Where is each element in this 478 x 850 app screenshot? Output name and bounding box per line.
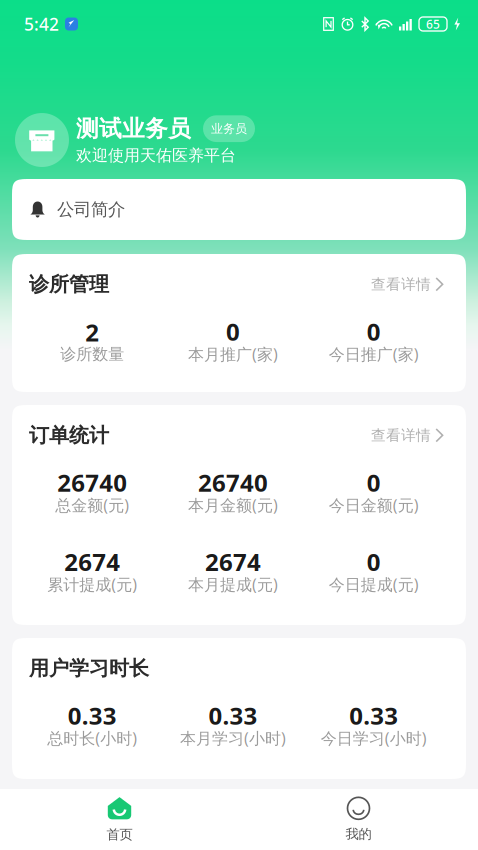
staticText: 26740 xyxy=(198,467,268,498)
staticText: 今日推广(家) xyxy=(329,343,419,365)
staticText: 总金额(元) xyxy=(55,494,129,516)
staticText: 本月学习(小时) xyxy=(180,727,286,749)
staticText: 业务员 xyxy=(211,121,247,136)
staticText: 5:42 xyxy=(24,12,59,35)
staticText: 总时长(小时) xyxy=(47,727,137,749)
staticText: 本月推广(家) xyxy=(188,343,278,365)
staticText: 测试业务员 xyxy=(76,115,191,143)
staticText: 我的 xyxy=(345,826,371,842)
staticText: 累计提成(元) xyxy=(47,574,137,595)
staticText: 0.33 xyxy=(208,700,257,731)
staticText: 26740 xyxy=(57,467,127,498)
staticText: 0.33 xyxy=(349,700,398,731)
staticText: 查看详情 xyxy=(371,275,431,293)
button[interactable]: 首页 xyxy=(0,789,239,850)
staticText: 0 xyxy=(367,316,381,347)
staticText: 首页 xyxy=(106,826,132,843)
staticText: 用户学习时长 xyxy=(29,656,149,681)
button[interactable]: 公司简介 xyxy=(12,179,466,240)
staticText: 诊所管理 xyxy=(29,272,109,297)
button[interactable]: 查看详情 xyxy=(371,426,444,444)
staticText: 2674 xyxy=(64,546,120,578)
staticText: 诊所数量 xyxy=(60,344,124,364)
staticText: 欢迎使用天佑医养平台 xyxy=(76,146,236,165)
staticText: 0.33 xyxy=(68,700,117,731)
staticText: 0 xyxy=(367,467,381,498)
staticText: 本月金额(元) xyxy=(188,494,278,516)
staticText: 本月提成(元) xyxy=(188,574,278,595)
button[interactable]: 我的 xyxy=(239,789,478,850)
staticText: 0 xyxy=(226,316,240,347)
button[interactable]: 查看详情 xyxy=(371,275,444,293)
staticText: 0 xyxy=(367,546,381,578)
staticText: 2674 xyxy=(205,546,261,578)
staticText: 65 xyxy=(426,16,440,32)
staticText: 公司简介 xyxy=(57,199,125,220)
staticText: 订单统计 xyxy=(29,423,109,448)
staticText: 今日金额(元) xyxy=(329,494,419,516)
staticText: 2 xyxy=(85,316,99,348)
staticText: 今日提成(元) xyxy=(329,574,419,595)
staticText: 今日学习(小时) xyxy=(321,727,427,749)
staticText: 查看详情 xyxy=(371,426,431,444)
